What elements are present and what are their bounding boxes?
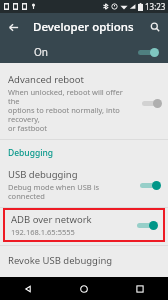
button[interactable]: Back [0, 277, 56, 300]
button[interactable]: On [0, 40, 168, 63]
staticText: Advanced reboot [8, 73, 85, 86]
staticText: USB debugging [8, 168, 78, 181]
button[interactable]: Recent apps [112, 277, 168, 300]
staticText: Debugging [8, 147, 54, 159]
button[interactable]: Home [56, 277, 112, 300]
button[interactable]: Search [142, 14, 168, 40]
staticText: Revoke USB debugging authorizations [8, 254, 160, 269]
button[interactable]: On [140, 178, 162, 192]
staticText: 192.168.1.65:5555 [11, 227, 75, 237]
button[interactable]: On [137, 218, 159, 232]
button[interactable]: Off [140, 96, 162, 110]
staticText: Debug mode when USB is connected [8, 182, 136, 201]
button[interactable]: Advanced reboot [0, 67, 168, 139]
button[interactable]: ADB over network [3, 208, 165, 242]
staticText: 13:23 [145, 1, 166, 12]
staticText: ADB over network [11, 213, 92, 226]
button[interactable]: Back [0, 14, 26, 40]
staticText: Developer options [33, 19, 134, 35]
staticText: When unlocked, reboot will offer the opt… [8, 87, 136, 133]
button[interactable]: On [138, 45, 160, 59]
button[interactable]: USB debugging [0, 162, 168, 207]
button[interactable]: Revoke USB debugging authorizations [0, 246, 168, 277]
staticText: On [34, 45, 48, 59]
